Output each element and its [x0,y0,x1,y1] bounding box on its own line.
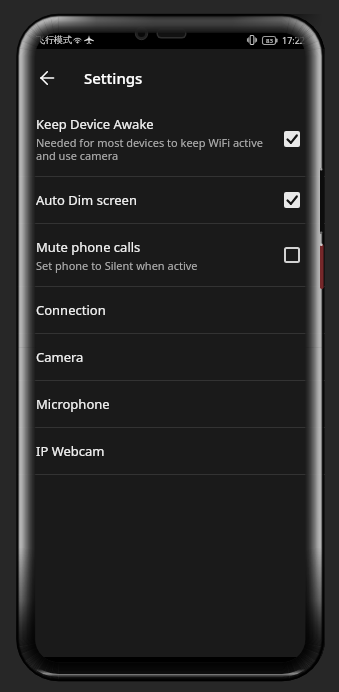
staticText: IP Webcam [36,442,317,460]
staticText: Microphone [36,395,317,413]
staticText: Needed for most devices to keep WiFi act… [36,135,272,163]
button[interactable]: IP Webcam [17,428,325,474]
button[interactable]: Back [29,60,65,96]
staticText: 83 [266,37,273,45]
staticText: Settings [84,68,143,88]
staticText: Camera [36,348,317,366]
button[interactable]: Connection [17,287,325,333]
button[interactable]: Microphone [17,381,325,427]
staticText: 17:22 [282,34,306,46]
staticText: Connection [36,301,317,319]
staticText: Set phone to Silent when active [36,258,198,273]
button[interactable]: Mute phone calls [17,224,325,286]
button[interactable]: Toggle setting [280,127,304,151]
button[interactable]: Camera [17,334,325,380]
button[interactable]: Toggle setting [280,243,304,267]
button[interactable]: Auto Dim screen [17,177,325,223]
button[interactable]: Keep Device Awake [17,101,325,176]
staticText: 飞行模式 [36,34,72,45]
button[interactable]: Toggle setting [280,188,304,212]
staticText: Keep Device Awake [36,115,154,133]
staticText: Mute phone calls [36,238,141,256]
staticText: Auto Dim screen [36,191,272,209]
